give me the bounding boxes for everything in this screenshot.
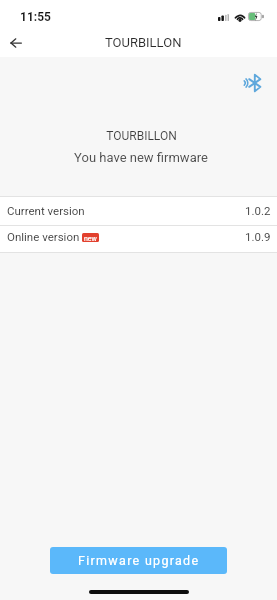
staticText: Firmware upgrade	[78, 553, 200, 568]
button[interactable]: Online version	[0, 226, 277, 252]
button[interactable]: Current version	[0, 197, 277, 225]
staticText: TOURBILLON	[106, 129, 177, 143]
staticText: 1.0.2	[245, 204, 271, 217]
button[interactable]: Firmware upgrade	[50, 547, 227, 574]
staticText: Online version	[7, 230, 80, 243]
staticText: new	[84, 235, 97, 242]
staticText: 1.0.9	[245, 230, 271, 243]
staticText: You have new firmware	[74, 150, 208, 165]
button[interactable]: Back	[3, 30, 28, 55]
button[interactable]: Bluetooth connected	[235, 68, 265, 98]
staticText: TOURBILLON	[105, 35, 182, 50]
staticText: 11:55	[20, 10, 51, 24]
staticText: Current version	[7, 204, 85, 217]
